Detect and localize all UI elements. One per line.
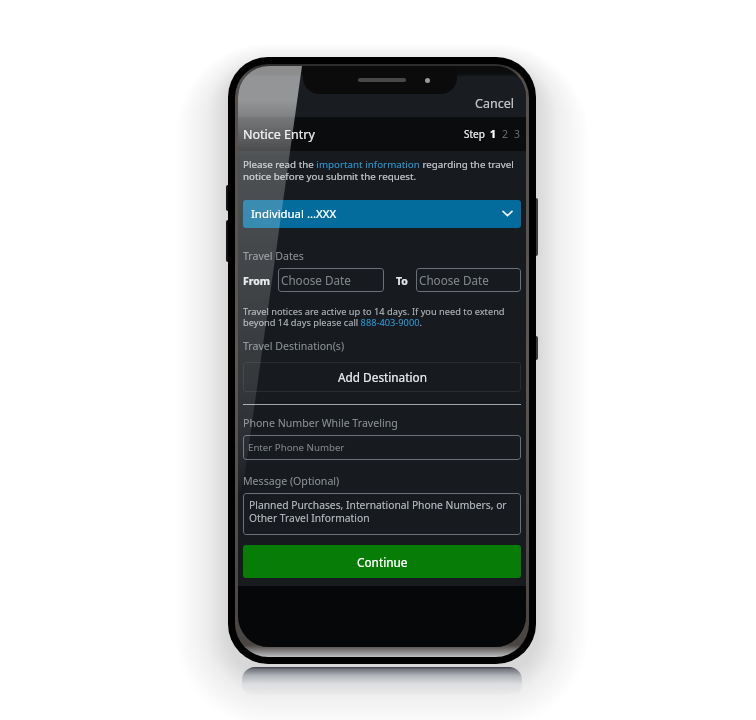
staticText: Travel Destination(s) (243, 339, 345, 353)
staticText: Continue (357, 554, 408, 570)
staticText: 3 (514, 127, 521, 141)
button[interactable]: Add Destination (243, 362, 521, 392)
button[interactable]: Planned Purchases, International Phone N… (243, 493, 521, 535)
staticText: Individual ...XXX (251, 206, 337, 222)
staticText: Enter Phone Number (248, 441, 345, 454)
staticText: To (396, 274, 408, 288)
staticText: Choose Date (419, 272, 489, 288)
button[interactable]: Choose Date (416, 268, 521, 292)
staticText: Message (Optional) (243, 474, 340, 488)
staticText: 1 (490, 127, 497, 141)
staticText: From (243, 274, 271, 288)
staticText: Planned Purchases, International Phone N… (249, 498, 515, 525)
staticText: Add Destination (338, 369, 427, 385)
button[interactable]: Enter Phone Number (243, 435, 521, 460)
button[interactable]: Continue (243, 545, 521, 578)
button[interactable]: Individual ...XXX (243, 200, 521, 228)
staticText: Travel Dates (243, 249, 304, 263)
button[interactable]: Choose Date (278, 268, 384, 292)
staticText: Notice Entry (243, 126, 315, 143)
staticText: 2 (502, 127, 509, 141)
staticText: Cancel (475, 95, 514, 112)
staticText: Please read the important information re… (243, 158, 521, 183)
staticText: Phone Number While Traveling (243, 416, 398, 430)
staticText: Choose Date (281, 272, 351, 288)
staticText: Travel notices are active up to 14 days.… (243, 305, 521, 329)
staticText: Step (464, 127, 485, 141)
button[interactable]: Cancel (472, 92, 517, 115)
